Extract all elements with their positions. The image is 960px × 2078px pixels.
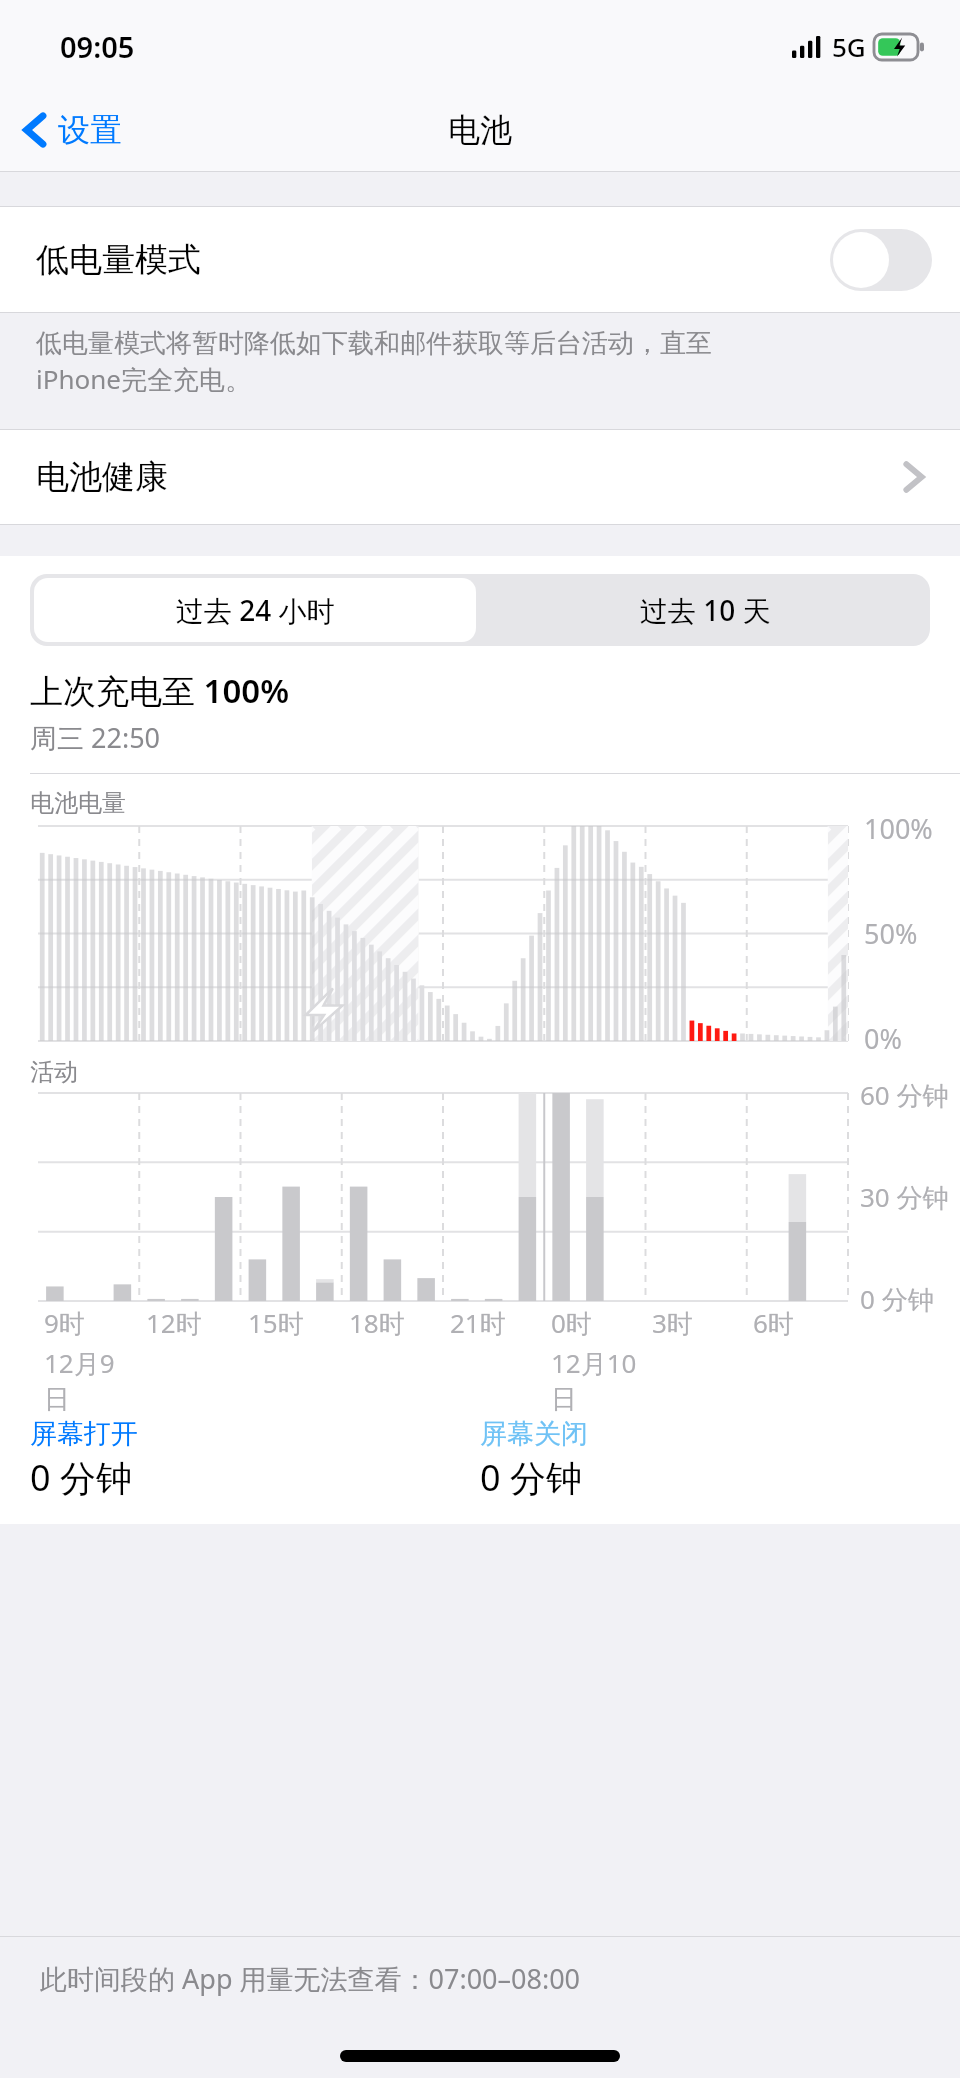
button[interactable]: 低电量模式 xyxy=(0,206,960,313)
staticText: 电池 xyxy=(448,110,512,150)
staticText: 12月9日 xyxy=(44,1345,140,1416)
staticText: 100% xyxy=(864,810,933,847)
staticText: 过去 10 天 xyxy=(640,591,771,629)
button[interactable]: 过去 24 小时 xyxy=(34,578,476,642)
staticText: 活动 xyxy=(30,1057,78,1087)
staticText: 15时 xyxy=(248,1305,304,1341)
staticText: 5G xyxy=(832,29,866,64)
staticText: 设置 xyxy=(58,110,122,150)
staticText: 18时 xyxy=(349,1305,405,1341)
staticText: 上次充电至 100% xyxy=(30,668,290,713)
staticText: 0 分钟 xyxy=(480,1453,582,1502)
staticText: 12时 xyxy=(146,1305,202,1341)
staticText: 30 分钟 xyxy=(860,1179,949,1215)
button[interactable]: 过去 10 天 xyxy=(480,574,930,646)
staticText: 9时 xyxy=(44,1305,85,1341)
button[interactable]: 电池健康 xyxy=(0,429,960,525)
staticText: 低电量模式将暂时降低如下载和邮件获取等后台活动，直至 iPhone完全充电。 xyxy=(36,327,712,397)
button[interactable]: 低电量模式开关 xyxy=(830,229,932,291)
staticText: 电池电量 xyxy=(30,788,126,818)
staticText: 21时 xyxy=(450,1305,506,1341)
staticText: 3时 xyxy=(652,1305,693,1341)
staticText: 周三 22:50 xyxy=(30,719,161,756)
staticText: 屏幕打开 xyxy=(30,1417,138,1451)
staticText: 60 分钟 xyxy=(860,1077,949,1113)
staticText: 低电量模式 xyxy=(36,239,201,281)
staticText: 09:05 xyxy=(60,27,135,66)
staticText: 屏幕关闭 xyxy=(480,1417,588,1451)
staticText: 12月10日 xyxy=(551,1345,646,1416)
staticText: 此时间段的 App 用量无法查看：07:00–08:00 xyxy=(40,1960,581,1997)
staticText: 电池健康 xyxy=(36,456,168,498)
staticText: 0 分钟 xyxy=(30,1453,132,1502)
staticText: 50% xyxy=(864,915,918,952)
staticText: 6时 xyxy=(753,1305,794,1341)
button[interactable]: 设置 xyxy=(0,102,136,158)
staticText: 0% xyxy=(864,1020,902,1057)
staticText: 0 分钟 xyxy=(860,1281,934,1317)
staticText: 过去 24 小时 xyxy=(176,591,335,629)
staticText: 0时 xyxy=(551,1305,592,1341)
